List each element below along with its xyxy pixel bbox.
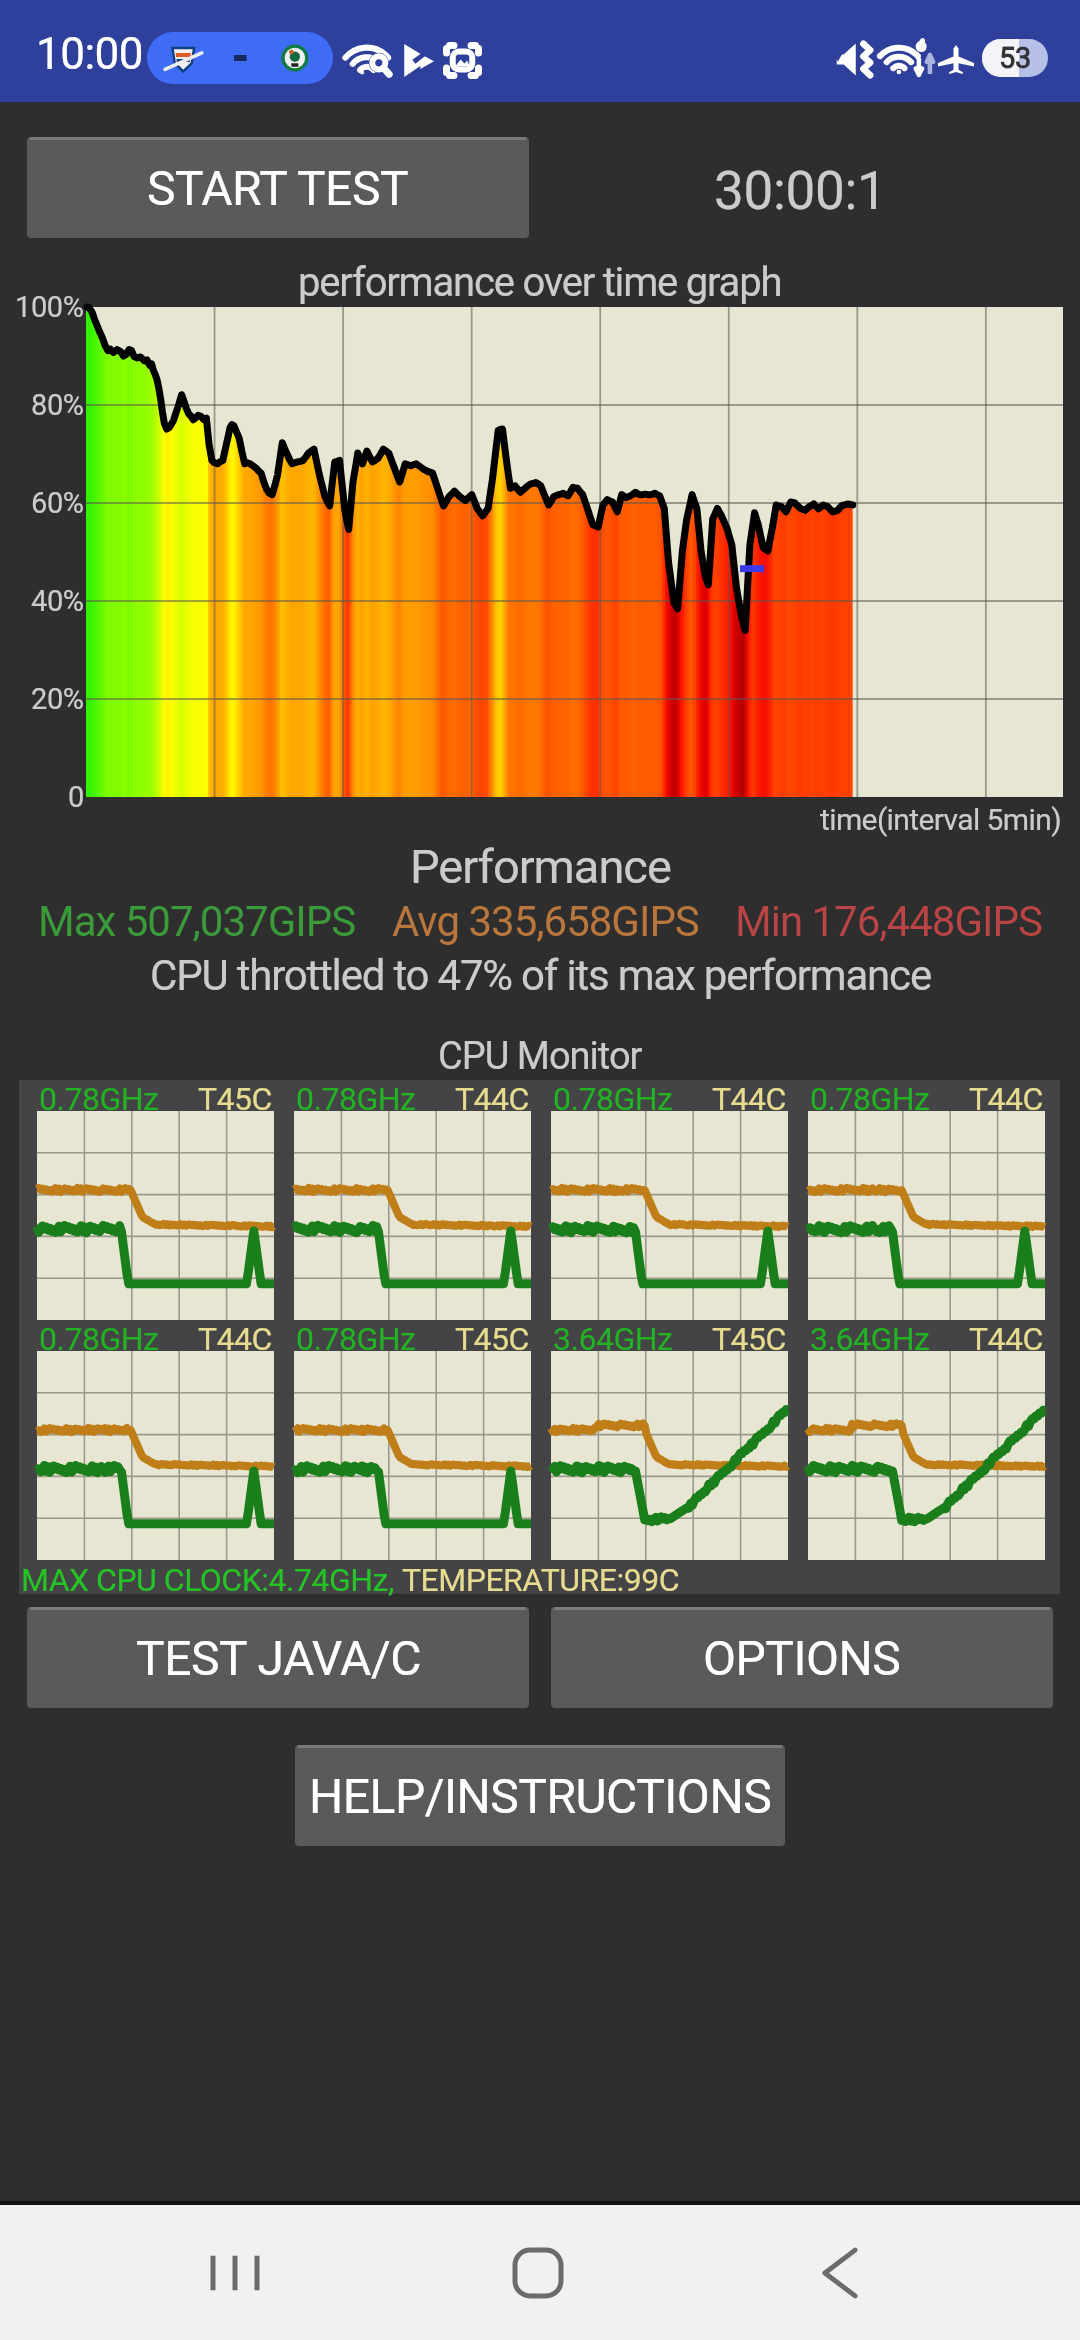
button[interactable]: Back (765, 2205, 915, 2340)
staticText: T44C (712, 1080, 786, 1118)
button[interactable]: Live game score (147, 32, 333, 84)
staticText: 3.64GHz (553, 1320, 673, 1358)
staticText: START TEST (147, 160, 409, 216)
staticText: T44C (455, 1080, 529, 1118)
staticText: 0.78GHz (553, 1080, 673, 1118)
button[interactable]: HELP/INSTRUCTIONS (295, 1745, 785, 1846)
staticText: performance over time graph (298, 259, 782, 306)
staticText: HELP/INSTRUCTIONS (309, 1768, 772, 1824)
staticText: TEMPERATURE:99C (402, 1561, 679, 1599)
staticText: T45C (455, 1320, 529, 1358)
staticText: 0.78GHz (39, 1320, 159, 1358)
staticText: T45C (198, 1080, 272, 1118)
staticText: 53 (999, 41, 1031, 75)
staticText: T44C (969, 1080, 1043, 1118)
button[interactable]: Recent apps (160, 2205, 310, 2340)
staticText: T44C (969, 1320, 1043, 1358)
staticText: Performance (410, 839, 671, 894)
staticText: 60% (31, 486, 84, 520)
staticText: 0.78GHz (810, 1080, 930, 1118)
staticText: 40% (31, 584, 84, 618)
staticText: 0.78GHz (39, 1080, 159, 1118)
staticText: CPU Monitor (438, 1034, 642, 1079)
staticText: time(interval 5min) (820, 802, 1062, 837)
staticText: CPU throttled to 47% of its max performa… (150, 951, 931, 1000)
staticText: MAX CPU CLOCK:4.74GHz, (21, 1561, 402, 1599)
staticText: 0.78GHz (296, 1080, 416, 1118)
staticText: Avg 335,658GIPS (392, 897, 699, 946)
button[interactable]: START TEST (27, 137, 529, 238)
staticText: TEST JAVA/C (136, 1630, 421, 1686)
staticText: T44C (198, 1320, 272, 1358)
staticText: 30:00:1 (714, 160, 887, 222)
staticText: 20% (31, 682, 84, 716)
staticText: Min 176,448GIPS (735, 897, 1042, 946)
staticText: OPTIONS (703, 1630, 901, 1686)
staticText: Max 507,037GIPS (38, 897, 356, 946)
button[interactable]: Home (463, 2205, 613, 2340)
button[interactable]: TEST JAVA/C (27, 1607, 529, 1708)
staticText: 0 (68, 780, 84, 814)
staticText: 10:00 (36, 28, 144, 80)
staticText: 80% (31, 388, 84, 422)
staticText: 0.78GHz (296, 1320, 416, 1358)
staticText: T45C (712, 1320, 786, 1358)
button[interactable]: OPTIONS (551, 1607, 1053, 1708)
staticText: 100% (15, 290, 84, 324)
staticText: 3.64GHz (810, 1320, 930, 1358)
